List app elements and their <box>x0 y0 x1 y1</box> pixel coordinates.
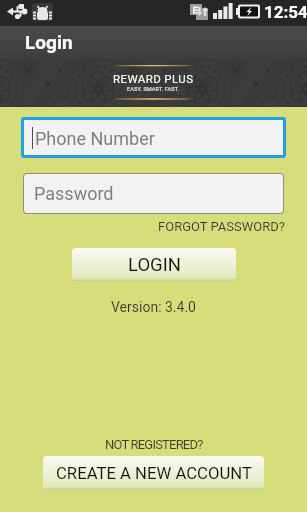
staticText: Password <box>34 183 114 204</box>
button[interactable]: Phone Number <box>24 120 283 155</box>
staticText: 12:54 <box>264 2 307 22</box>
staticText: CREATE A NEW ACCOUNT <box>56 464 252 484</box>
staticText: Phone Number <box>35 128 155 149</box>
button[interactable]: FORGOT PASSWORD? <box>148 216 307 237</box>
button[interactable]: Password <box>24 174 283 213</box>
staticText: LOGIN <box>128 254 181 276</box>
staticText: Login <box>25 31 73 53</box>
staticText: Version: 3.4.0 <box>111 299 196 315</box>
button[interactable]: CREATE A NEW ACCOUNT <box>43 456 264 491</box>
staticText: FORGOT PASSWORD? <box>158 219 285 234</box>
staticText: EASY. SMART. FAST. <box>127 86 180 93</box>
button[interactable]: LOGIN <box>72 248 236 282</box>
staticText: NOT REGISTERED? <box>105 437 203 452</box>
staticText: REWARD PLUS <box>113 72 194 85</box>
